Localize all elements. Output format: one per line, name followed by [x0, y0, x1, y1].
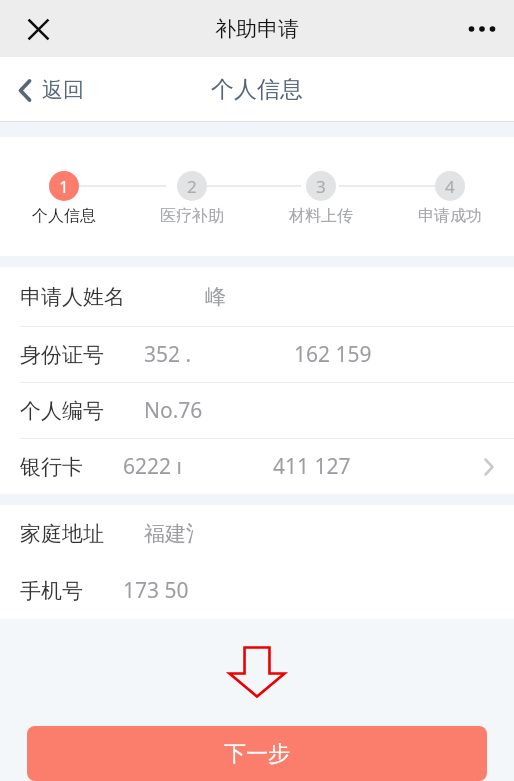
staticText: 申请成功 — [418, 206, 482, 226]
staticText: 2 — [187, 175, 197, 198]
staticText: 补助申请 — [215, 16, 299, 42]
button[interactable]: 2 — [128, 171, 256, 226]
button[interactable]: Close — [17, 8, 59, 50]
staticText: 返回 — [42, 77, 84, 103]
staticText: No.76 — [144, 396, 203, 425]
staticText: 银行卡 — [20, 454, 83, 480]
staticText: 162 159 — [294, 340, 372, 369]
button[interactable]: 手机号 — [0, 562, 514, 619]
staticText: 申请人姓名 — [20, 284, 125, 310]
staticText: 下一步 — [224, 740, 290, 768]
staticText: 家庭地址 — [20, 521, 104, 547]
staticText: 身份证号 — [20, 342, 104, 368]
staticText: 3 — [316, 175, 326, 198]
button[interactable]: 个人编号 — [0, 383, 514, 438]
staticText: 4 — [445, 175, 455, 198]
button[interactable]: 银行卡 — [0, 439, 514, 494]
staticText: 173 50 — [123, 576, 189, 605]
staticText: 个人信息 — [211, 75, 303, 104]
staticText: 医疗补助 — [160, 206, 224, 226]
staticText: 材料上传 — [289, 206, 353, 226]
button[interactable]: 1 — [0, 171, 128, 226]
button[interactable]: 返回 — [12, 67, 90, 113]
button[interactable]: 下一步 — [27, 726, 487, 781]
staticText: 6222 ı — [123, 452, 182, 481]
staticText: 手机号 — [20, 578, 83, 604]
staticText: 福建氵 — [144, 521, 207, 547]
button[interactable]: 身份证号 — [0, 327, 514, 382]
staticText: 411 127 — [273, 452, 351, 481]
staticText: 352 . — [144, 340, 192, 369]
button[interactable]: More options — [458, 5, 506, 53]
staticText: 峰 — [205, 284, 226, 310]
button[interactable]: 3 — [256, 171, 385, 226]
staticText: 1 — [59, 175, 69, 198]
button[interactable]: 4 — [385, 171, 514, 226]
staticText: 个人信息 — [32, 206, 96, 226]
button[interactable]: 申请人姓名 — [0, 267, 514, 326]
button[interactable]: 家庭地址 — [0, 505, 514, 562]
staticText: 个人编号 — [20, 398, 104, 424]
